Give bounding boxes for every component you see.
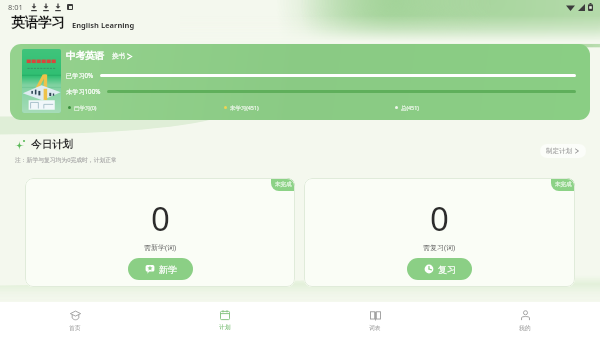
button[interactable]: 制定计划: [540, 144, 586, 158]
button[interactable]: 计划: [150, 302, 300, 338]
button[interactable]: 复习: [407, 258, 472, 280]
staticText: 中考英语: [66, 50, 104, 62]
staticText: 未学习100%: [66, 87, 101, 95]
staticText: 计划: [219, 323, 231, 330]
staticText: 复习: [438, 264, 456, 275]
staticText: 已学习0%: [66, 71, 94, 79]
button[interactable]: 未完成: [25, 178, 295, 287]
button[interactable]: 词表: [300, 302, 450, 338]
button[interactable]: 我的: [450, 302, 600, 338]
button[interactable]: 新学: [128, 258, 193, 280]
staticText: 制定计划: [546, 147, 572, 155]
button[interactable]: 换书: [112, 52, 133, 60]
staticText: English Learning: [72, 20, 135, 30]
button[interactable]: 未完成: [304, 178, 575, 287]
staticText: 已学习(0): [74, 104, 97, 111]
staticText: 未学习(451): [230, 104, 259, 111]
staticText: 需复习(词): [423, 243, 456, 253]
staticText: 需新学(词): [144, 243, 177, 253]
button[interactable]: 中考英语: [10, 44, 590, 120]
staticText: 未完成: [275, 181, 292, 188]
staticText: 总(451): [401, 104, 419, 111]
staticText: 词表: [369, 324, 381, 331]
staticText: 0: [430, 196, 449, 241]
staticText: 换书: [112, 52, 125, 60]
staticText: 我的: [519, 324, 531, 331]
staticText: 新学: [159, 264, 177, 275]
staticText: 未完成: [555, 181, 572, 188]
staticText: 注：新学与复习均为0完成时，计划正常: [15, 156, 117, 164]
staticText: 首页: [69, 324, 81, 331]
staticText: 今日计划: [31, 138, 73, 151]
staticText: 8:01: [8, 2, 23, 12]
staticText: 0: [151, 196, 170, 241]
button[interactable]: 首页: [0, 302, 150, 338]
staticText: 英语学习: [11, 14, 65, 31]
